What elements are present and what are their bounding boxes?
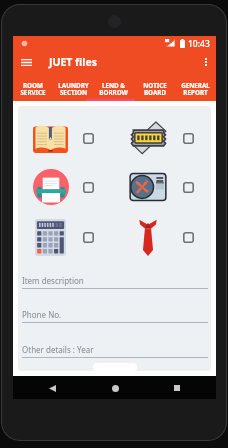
- button[interactable]: Select item: [75, 118, 101, 158]
- button[interactable]: [109, 167, 187, 207]
- button[interactable]: Phone No.: [22, 309, 208, 323]
- button[interactable]: Select item: [175, 217, 201, 257]
- button[interactable]: ROOM SERVICE: [13, 76, 53, 101]
- staticText: LEND & BORROW: [99, 81, 128, 97]
- button[interactable]: More options: [196, 48, 216, 76]
- button[interactable]: [26, 217, 75, 257]
- staticText: Item description: [22, 275, 84, 286]
- button[interactable]: LAUNDRY SECTION: [53, 76, 93, 101]
- staticText: NOTICE BOARD: [143, 81, 167, 97]
- button[interactable]: Select item: [175, 118, 201, 158]
- staticText: GENERAL REPORT: [181, 81, 210, 97]
- staticText: 10:43: [188, 38, 210, 48]
- button[interactable]: LEND & BORROW: [93, 76, 134, 101]
- button[interactable]: Item description: [22, 275, 208, 289]
- button[interactable]: Other details : Year: [22, 344, 208, 358]
- button[interactable]: Recent apps: [168, 379, 186, 397]
- button[interactable]: [109, 118, 187, 158]
- button[interactable]: Select item: [75, 217, 101, 257]
- button[interactable]: NOTICE BOARD: [134, 76, 175, 101]
- button[interactable]: [109, 217, 187, 257]
- button[interactable]: GENERAL REPORT: [175, 76, 216, 101]
- staticText: LAUNDRY SECTION: [58, 81, 89, 97]
- button[interactable]: Open navigation drawer: [13, 48, 40, 76]
- button[interactable]: Select item: [175, 167, 201, 207]
- button[interactable]: Home: [106, 379, 124, 397]
- button[interactable]: [26, 118, 75, 158]
- staticText: JUET files: [49, 55, 97, 69]
- staticText: ROOM SERVICE: [20, 81, 46, 97]
- staticText: Other details : Year: [22, 344, 94, 355]
- staticText: Phone No.: [22, 309, 62, 320]
- button[interactable]: Select item: [75, 167, 101, 207]
- button[interactable]: [26, 167, 75, 207]
- button[interactable]: Back: [43, 379, 61, 397]
